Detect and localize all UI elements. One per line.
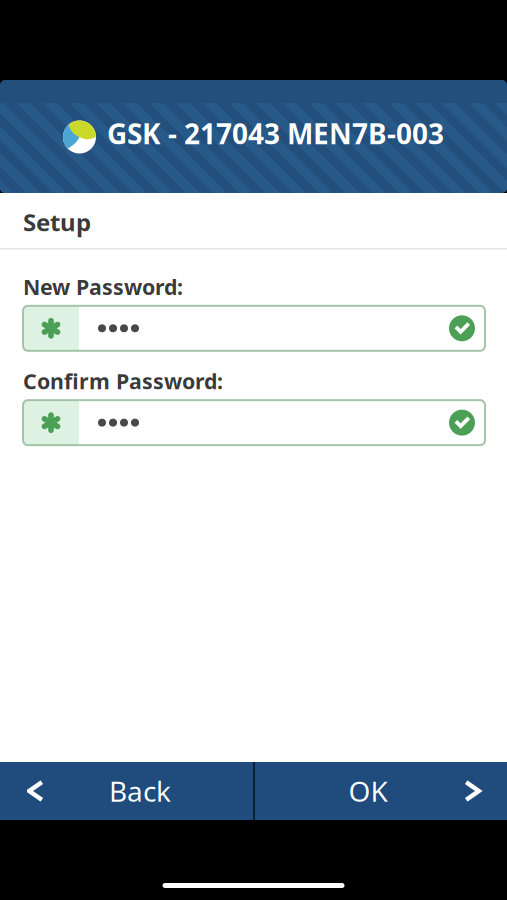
staticText: Back (109, 772, 171, 810)
button[interactable]: OK (255, 762, 507, 820)
staticText: OK (348, 772, 387, 810)
staticText: Confirm Password: (23, 367, 223, 395)
staticText: Setup (23, 206, 91, 238)
button[interactable]: Password (23, 306, 485, 351)
button[interactable]: Back (0, 762, 253, 820)
button[interactable]: Password (23, 400, 485, 445)
staticText: GSK - 217043 MEN7B-003 (107, 115, 444, 152)
staticText: New Password: (23, 272, 183, 301)
